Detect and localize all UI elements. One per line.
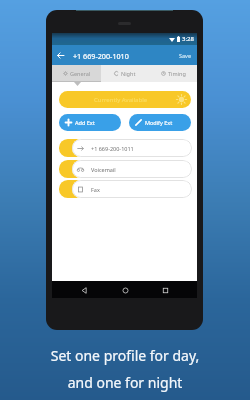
staticText: Modify Ext (145, 119, 173, 126)
staticText: +1 669-200-1011 (91, 145, 134, 152)
button[interactable]: Back (53, 45, 67, 66)
button[interactable]: Night (101, 65, 149, 82)
button[interactable]: Back (76, 282, 92, 298)
button[interactable]: Save (176, 49, 195, 62)
staticText: Save (179, 52, 192, 59)
button[interactable]: Home (117, 282, 133, 298)
button[interactable]: Modify Ext (129, 114, 191, 131)
staticText: 3:28 (182, 35, 194, 43)
button[interactable]: Timing (149, 65, 197, 82)
staticText: Fax (91, 186, 100, 193)
button[interactable]: Add Ext (59, 114, 121, 131)
button[interactable]: General (52, 65, 101, 82)
button[interactable]: Fax (72, 180, 192, 198)
button[interactable]: Voicemail (72, 160, 192, 178)
staticText: Night (121, 70, 136, 77)
staticText: Set one profile for day, (0, 346, 250, 365)
staticText: Voicemail (91, 166, 116, 173)
button[interactable]: Currently Available (59, 91, 191, 108)
staticText: Currently Available (94, 96, 148, 104)
staticText: Add Ext (75, 119, 95, 126)
button[interactable]: Recents (157, 282, 173, 298)
staticText: +1 669-200-1010 (73, 51, 129, 61)
staticText: General (70, 70, 91, 77)
button[interactable]: +1 669-200-1011 (72, 139, 192, 157)
staticText: and one for night (0, 373, 250, 392)
staticText: Timing (168, 70, 186, 77)
